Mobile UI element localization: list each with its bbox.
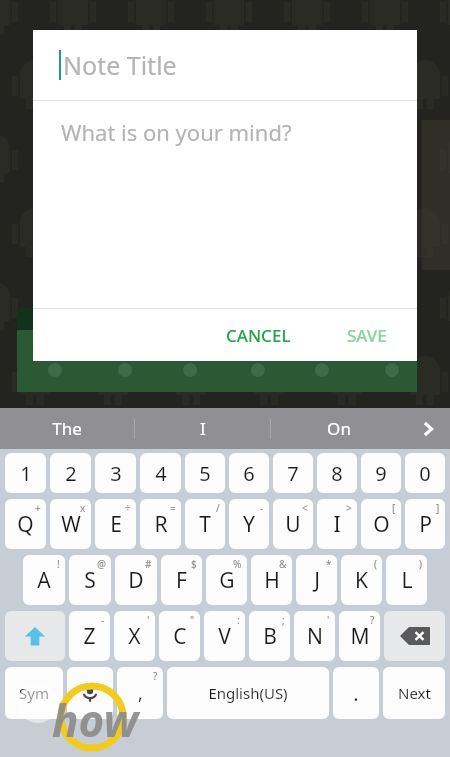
button[interactable]: English(US) xyxy=(167,667,329,719)
staticText: ' xyxy=(147,613,150,627)
staticText: ( xyxy=(374,557,377,571)
button[interactable]: : xyxy=(204,611,245,661)
staticText: " xyxy=(190,613,195,627)
button[interactable]: ] xyxy=(405,499,445,549)
button[interactable]: More suggestions xyxy=(406,408,450,449)
button[interactable]: CANCEL xyxy=(212,316,305,355)
button[interactable]: ( xyxy=(341,555,382,605)
staticText: I xyxy=(200,417,206,440)
button[interactable]: / xyxy=(185,499,225,549)
staticText: [ xyxy=(392,501,396,515)
button[interactable]: 5 xyxy=(185,453,225,493)
staticText: V xyxy=(218,622,231,651)
button[interactable]: 4 xyxy=(140,453,181,493)
button[interactable]: & xyxy=(251,555,292,605)
button[interactable]: 3 xyxy=(95,453,136,493)
button[interactable]: On xyxy=(271,408,406,449)
button[interactable]: What is on your mind? xyxy=(33,101,417,308)
staticText: Y xyxy=(243,510,255,539)
button[interactable]: 7 xyxy=(273,453,313,493)
staticText: R xyxy=(154,510,168,539)
button[interactable]: * xyxy=(296,555,337,605)
button[interactable]: ? xyxy=(117,667,163,719)
button[interactable]: . xyxy=(333,667,379,719)
staticText: S xyxy=(84,566,96,595)
button[interactable]: Backspace xyxy=(384,611,445,661)
staticText: 6 xyxy=(243,460,255,487)
button[interactable]: ? xyxy=(339,611,380,661)
button[interactable]: % xyxy=(206,555,247,605)
button[interactable]: = xyxy=(140,499,181,549)
staticText: 1 xyxy=(20,460,32,487)
staticText: CANCEL xyxy=(226,324,291,347)
button[interactable]: Note Title xyxy=(33,30,417,100)
staticText: E xyxy=(110,510,122,539)
button[interactable]: - xyxy=(69,611,110,661)
staticText: K xyxy=(355,566,368,595)
staticText: L xyxy=(401,566,413,595)
staticText: $ xyxy=(191,557,197,571)
button[interactable]: # xyxy=(115,555,157,605)
staticText: Next xyxy=(398,683,431,703)
staticText: G xyxy=(219,566,235,595)
staticText: - xyxy=(260,501,264,515)
button[interactable]: ; xyxy=(249,611,290,661)
button[interactable]: 9 xyxy=(361,453,401,493)
button[interactable]: - xyxy=(229,499,269,549)
staticText: + xyxy=(35,501,41,515)
button[interactable]: [ xyxy=(361,499,401,549)
staticText: On xyxy=(327,417,351,440)
button[interactable]: @ xyxy=(69,555,111,605)
button[interactable]: 8 xyxy=(317,453,357,493)
staticText: - xyxy=(101,613,105,627)
staticText: P xyxy=(419,510,432,539)
button[interactable]: > xyxy=(317,499,357,549)
staticText: 9 xyxy=(375,460,387,487)
staticText: D xyxy=(128,566,144,595)
button[interactable]: < xyxy=(273,499,313,549)
button[interactable]: 2 xyxy=(50,453,91,493)
staticText: > xyxy=(346,501,352,515)
staticText: 8 xyxy=(331,460,343,487)
staticText: ) xyxy=(419,557,422,571)
button[interactable]: 1 xyxy=(5,453,46,493)
button[interactable]: 0 xyxy=(405,453,445,493)
button[interactable]: " xyxy=(159,611,200,661)
staticText: F xyxy=(176,566,187,595)
button[interactable]: Shift xyxy=(5,611,65,661)
staticText: Q xyxy=(17,510,34,539)
button[interactable]: ' xyxy=(294,611,335,661)
staticText: @ xyxy=(97,557,106,571)
button[interactable]: + xyxy=(5,499,46,549)
staticText: & xyxy=(279,557,287,571)
button[interactable]: 6 xyxy=(229,453,269,493)
staticText: O xyxy=(373,510,390,539)
staticText: / xyxy=(216,501,220,515)
button[interactable]: ÷ xyxy=(95,499,136,549)
button[interactable]: x xyxy=(50,499,91,549)
staticText: Note Title xyxy=(63,48,177,82)
staticText: X xyxy=(128,622,141,651)
button[interactable]: Voice input xyxy=(67,667,113,719)
button[interactable]: Next xyxy=(383,667,445,719)
staticText: English(US) xyxy=(208,683,288,703)
button[interactable]: I xyxy=(135,408,270,449)
staticText: < xyxy=(302,501,308,515)
button[interactable]: ) xyxy=(386,555,427,605)
staticText: SAVE xyxy=(347,324,387,347)
staticText: 7 xyxy=(287,460,299,487)
button[interactable]: $ xyxy=(161,555,202,605)
button[interactable]: ' xyxy=(114,611,155,661)
staticText: H xyxy=(264,566,280,595)
staticText: W xyxy=(61,510,81,539)
button[interactable]: ! xyxy=(23,555,65,605)
staticText: Sym xyxy=(19,683,49,703)
button[interactable]: SAVE xyxy=(333,316,401,355)
staticText: The xyxy=(52,417,82,440)
button[interactable]: Sym xyxy=(5,667,63,719)
staticText: What is on your mind? xyxy=(61,117,292,147)
staticText: ÷ xyxy=(125,501,131,515)
button[interactable]: The xyxy=(0,408,134,449)
staticText: I xyxy=(333,510,341,539)
staticText: ? xyxy=(153,669,158,683)
